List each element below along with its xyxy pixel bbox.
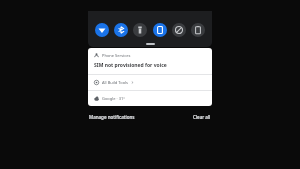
staticText: Manage notifications <box>89 114 135 120</box>
button[interactable]: Do not disturb <box>172 23 186 37</box>
button[interactable]: Flashlight <box>133 23 147 37</box>
button[interactable]: Battery saver <box>191 23 205 37</box>
button[interactable]: Bluetooth <box>114 23 128 37</box>
staticText: Google · 31° <box>102 96 125 101</box>
staticText: SIM not provisioned for voice <box>94 62 167 69</box>
staticText: All Build Tools <box>102 80 129 85</box>
button[interactable]: Google · 31° <box>88 91 212 106</box>
button[interactable]: Manage notifications <box>88 112 136 122</box>
button[interactable]: All Build Tools <box>88 75 212 90</box>
button[interactable]: Auto rotate <box>153 23 167 37</box>
staticText: Clear all <box>193 114 211 120</box>
button[interactable]: Phone Services <box>88 48 212 74</box>
staticText: Phone Services <box>102 53 131 58</box>
button[interactable]: Clear all <box>192 112 212 122</box>
button[interactable]: Wi-Fi <box>95 23 109 37</box>
